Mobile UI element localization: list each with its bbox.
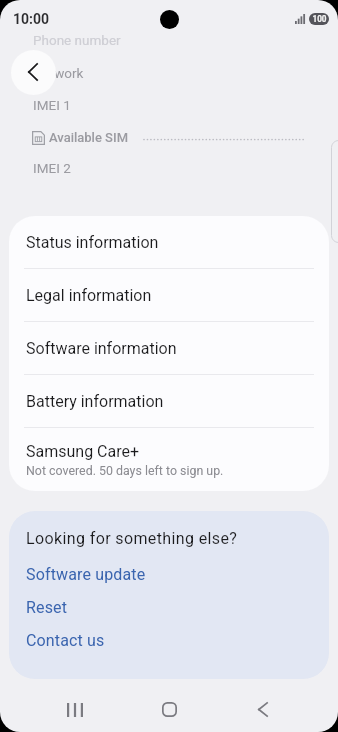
button[interactable]: Back xyxy=(216,687,310,732)
button[interactable]: Contact us xyxy=(9,624,329,657)
button[interactable]: Software information xyxy=(9,322,329,374)
staticText: Available SIM xyxy=(49,130,129,145)
staticText: Phone number xyxy=(33,32,121,48)
staticText: Looking for something else? xyxy=(26,529,238,548)
staticText: Reset xyxy=(26,598,68,617)
staticText: IMEI 1 xyxy=(33,97,71,113)
staticText: Legal information xyxy=(26,286,152,305)
button[interactable]: Recent apps xyxy=(28,687,122,732)
staticText: Software update xyxy=(26,565,146,584)
button[interactable]: Legal information xyxy=(9,269,329,321)
staticText: Battery information xyxy=(26,392,164,411)
button[interactable]: Status information xyxy=(9,216,329,268)
staticText: Not covered. 50 days left to sign up. xyxy=(26,463,224,478)
staticText: Contact us xyxy=(26,631,105,650)
button[interactable]: Navigate up xyxy=(11,50,56,95)
button[interactable]: Samsung Care+ xyxy=(9,428,329,478)
button[interactable]: Home xyxy=(122,687,216,732)
button[interactable]: Battery information xyxy=(9,375,329,427)
button[interactable]: Software update xyxy=(9,558,329,591)
staticText: Status information xyxy=(26,233,159,252)
staticText: 10:00 xyxy=(13,11,50,27)
staticText: IMEI 2 xyxy=(33,160,71,176)
staticText: Network xyxy=(33,65,84,81)
staticText: Samsung Care+ xyxy=(26,442,140,461)
staticText: Software information xyxy=(26,339,177,358)
button[interactable]: Reset xyxy=(9,591,329,624)
staticText: 100 xyxy=(312,14,327,24)
